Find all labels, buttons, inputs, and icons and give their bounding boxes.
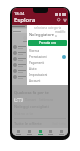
staticText: seleziona categoria [34,26,62,30]
button[interactable]: Category [23,36,27,42]
staticText: 18:34 [14,11,25,16]
staticText: Noleggi consigliati [14,104,49,109]
button[interactable]: Pagamenti [29,60,66,66]
staticText: Prenotazioni [29,55,47,59]
staticText: Impostazioni [29,73,48,77]
staticText: Esplora [14,16,36,24]
button[interactable] [13,29,67,33]
button[interactable]: Category [38,36,42,42]
button[interactable]: Prenota ora [28,40,67,46]
staticText: Pagamenti [29,61,45,65]
button[interactable] [13,62,67,68]
button[interactable]: Scan [36,128,45,136]
button[interactable]: Home [14,128,23,136]
button[interactable] [13,50,67,56]
staticText: Aiuto [29,67,37,71]
button[interactable]: Prenotazioni [29,54,66,60]
staticText: Qualcosa fa per te [14,90,49,95]
button[interactable] [13,44,67,50]
staticText: Oggi [15,98,22,102]
button[interactable]: Impostazioni [29,72,66,78]
button[interactable] [13,74,67,80]
button[interactable]: Account [29,78,66,84]
button[interactable] [13,56,67,62]
button[interactable]: Search [56,17,62,23]
button[interactable]: Aiuto [29,66,66,72]
staticText: Ricerca [29,49,40,53]
staticText: Noleggiatore [29,32,55,37]
staticText: modifica [55,30,66,38]
staticText: Tutte le offerte [14,121,42,126]
button[interactable]: Category [53,36,57,42]
button[interactable]: Search [25,128,34,136]
staticText: Prenota ora [39,41,56,45]
button[interactable]: Oggi [14,98,23,102]
button[interactable] [13,68,67,74]
button[interactable]: Bookings [46,128,55,136]
button[interactable]: Ricerca [29,48,66,54]
staticText: Account [29,79,41,83]
button[interactable]: Profile [57,128,66,136]
button[interactable]: Filter [62,17,68,23]
